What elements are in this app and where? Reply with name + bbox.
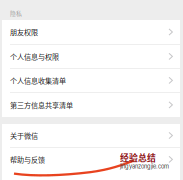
button[interactable]: 第三方信息共享清单 [2, 93, 180, 117]
staticText: jingyanzongjie.com [120, 163, 169, 170]
staticText: 个人信息与权限 [10, 51, 59, 61]
button[interactable]: 帮助与反馈 [2, 148, 180, 171]
button[interactable]: 关于微信 [2, 124, 180, 147]
staticText: 第三方信息共享清单 [10, 100, 73, 110]
button[interactable]: 个人信息收集清单 [2, 69, 180, 92]
button[interactable]: 朋友权限 [2, 20, 180, 44]
staticText: 关于微信 [10, 130, 38, 141]
staticText: 隐私 [10, 9, 22, 17]
staticText: 经验总结 [120, 151, 156, 164]
staticText: 个人信息收集清单 [10, 75, 66, 85]
staticText: 帮助与反馈 [10, 154, 45, 164]
staticText: 朋友权限 [10, 27, 38, 37]
button[interactable]: 个人信息与权限 [2, 45, 180, 68]
